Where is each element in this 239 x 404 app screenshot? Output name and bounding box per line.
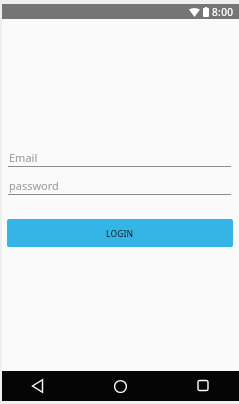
button[interactable]: Email xyxy=(8,148,231,167)
button[interactable] xyxy=(27,375,49,397)
button[interactable] xyxy=(109,375,131,397)
staticText: 8:00 xyxy=(212,5,234,19)
button[interactable]: password xyxy=(8,176,231,195)
staticText: password xyxy=(9,178,59,193)
staticText: LOGIN xyxy=(106,228,134,240)
button[interactable]: LOGIN xyxy=(7,219,233,247)
button[interactable] xyxy=(192,375,214,397)
staticText: Email xyxy=(9,150,38,165)
